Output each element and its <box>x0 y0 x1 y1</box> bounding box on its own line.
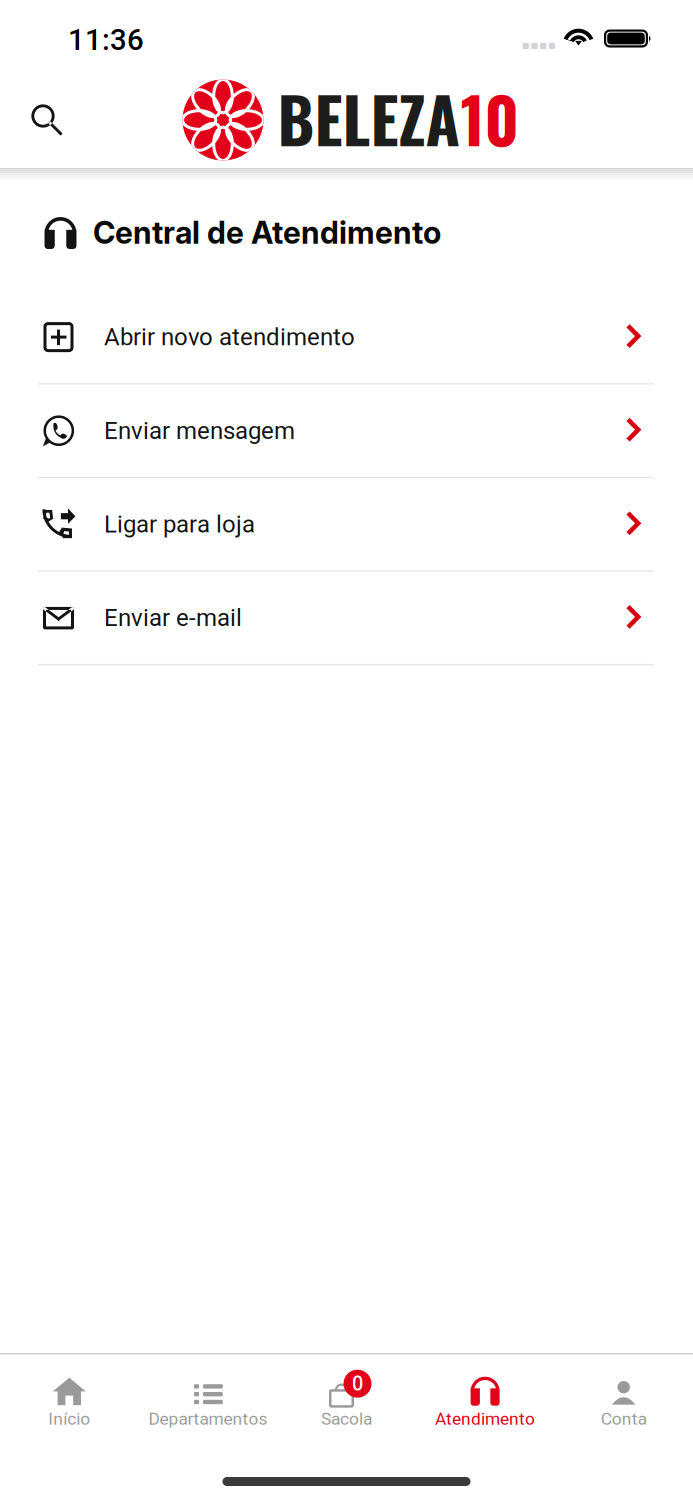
staticText: Conta <box>601 1409 647 1429</box>
button[interactable]: Enviar e-mail <box>0 572 693 665</box>
staticText: BELEZA <box>277 72 460 164</box>
staticText: 10 <box>460 72 518 164</box>
staticText: Ligar para loja <box>104 510 255 538</box>
button[interactable]: Ligar para loja <box>0 478 693 572</box>
staticText: Enviar e-mail <box>104 604 242 632</box>
button[interactable]: Abrir novo atendimento <box>0 291 693 385</box>
button[interactable]: Departamentos <box>139 1355 277 1443</box>
button[interactable]: Conta <box>554 1355 693 1443</box>
staticText: 11:36 <box>68 23 144 57</box>
button[interactable]: Buscar <box>10 77 84 163</box>
button[interactable]: 0 <box>277 1355 416 1443</box>
staticText: Atendimento <box>435 1409 535 1429</box>
staticText: Sacola <box>321 1409 372 1429</box>
button[interactable]: Início <box>0 1355 139 1443</box>
button[interactable]: Beleza10 <box>178 72 514 168</box>
staticText: Departamentos <box>148 1409 267 1429</box>
staticText: 0 <box>352 1372 363 1395</box>
staticText: Enviar mensagem <box>104 417 295 445</box>
button[interactable]: Enviar mensagem <box>0 385 693 478</box>
staticText: Início <box>48 1409 90 1429</box>
staticText: Central de Atendimento <box>93 214 441 251</box>
staticText: Abrir novo atendimento <box>104 323 355 351</box>
button[interactable]: Atendimento <box>416 1355 554 1443</box>
